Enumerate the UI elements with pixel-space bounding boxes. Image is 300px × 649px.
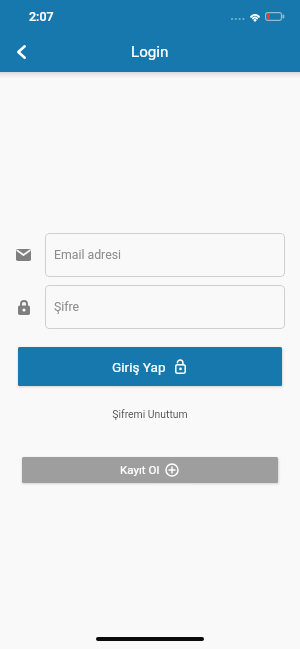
staticText: Kayıt Ol [120,463,160,477]
button[interactable]: Back [0,30,42,72]
button[interactable]: Şifre [45,285,285,329]
staticText: Login [131,43,169,61]
staticText: 2:07 [29,9,54,24]
button[interactable]: Şifremi Unuttum [0,407,300,419]
staticText: Giriş Yap [112,359,166,375]
button[interactable]: Giriş Yap [18,347,282,386]
button[interactable]: Kayıt Ol [22,457,278,483]
button[interactable]: Email adresi [45,233,285,277]
staticText: Email adresi [54,248,122,262]
staticText: Şifre [54,300,80,314]
